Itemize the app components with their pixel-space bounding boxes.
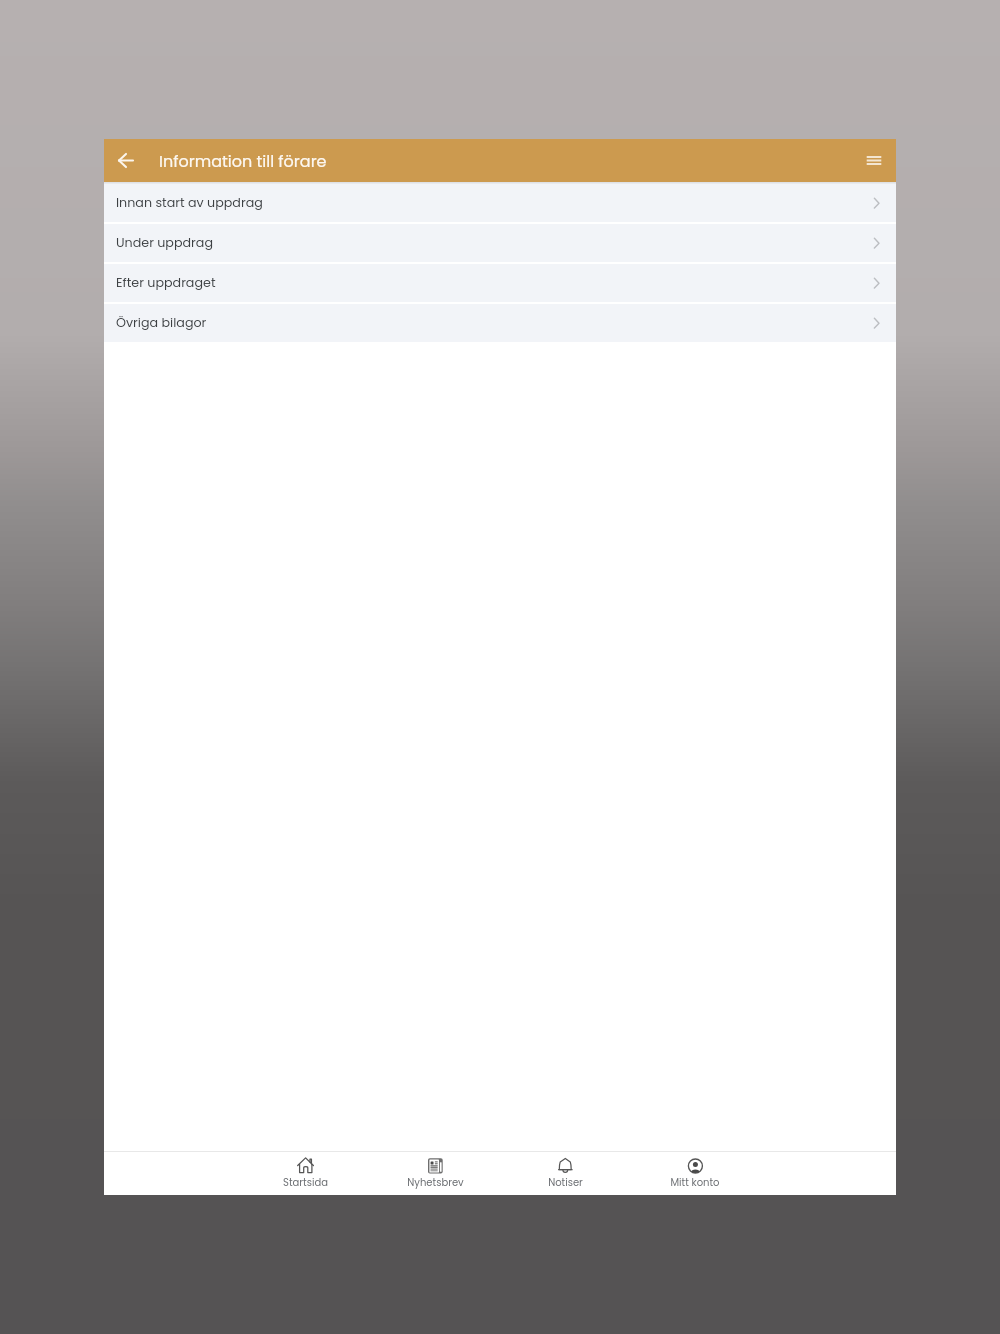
button[interactable]: Back [108,139,144,182]
button[interactable]: Notifications [500,1152,630,1195]
staticText: Nyhetsbrev [407,1175,464,1189]
button[interactable]: Newsletter [370,1152,500,1195]
button[interactable]: Home [240,1152,370,1195]
button[interactable]: Under uppdrag [104,224,896,262]
staticText: Efter uppdraget [116,274,216,292]
staticText: Notiser [548,1175,583,1189]
staticText: Startsida [283,1175,328,1189]
staticText: Övriga bilagor [116,314,207,332]
button[interactable]: Efter uppdraget [104,264,896,302]
button[interactable]: Övriga bilagor [104,304,896,342]
button[interactable]: Open menu [859,139,889,182]
staticText: Under uppdrag [116,234,213,252]
staticText: Information till förare [159,150,327,172]
button[interactable]: Innan start av uppdrag [104,184,896,222]
staticText: Mitt konto [670,1175,720,1189]
staticText: Innan start av uppdrag [116,194,263,212]
button[interactable]: My account [630,1152,760,1195]
